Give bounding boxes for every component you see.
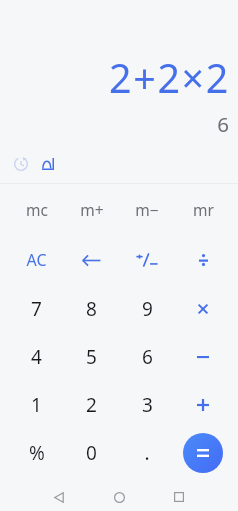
button[interactable] [175,236,231,284]
button[interactable]: m+ [64,185,119,233]
button[interactable] [175,381,231,429]
staticText: 2 [86,392,97,418]
staticText: 6 [142,344,153,370]
button[interactable]: History [7,150,35,178]
staticText: m− [135,199,159,220]
button[interactable]: 7 [9,285,64,333]
staticText: . [144,440,150,466]
staticText: mc [26,199,48,220]
staticText: 2+2×2 [109,51,230,105]
staticText: AC [26,249,47,271]
button[interactable]: 2 [64,381,119,429]
button[interactable]: 5 [64,333,119,381]
staticText: 6 [217,110,229,138]
button[interactable] [119,236,175,284]
staticText: 8 [86,296,97,322]
staticText: 4 [31,344,42,370]
button[interactable]: Recent apps [166,484,192,510]
button[interactable]: mr [175,185,231,233]
button[interactable]: Back [46,484,72,510]
button[interactable] [64,236,119,284]
button[interactable]: 6 [119,333,175,381]
button[interactable]: m− [119,185,175,233]
button[interactable]: 9 [119,285,175,333]
staticText: 0 [86,440,97,466]
button[interactable] [175,333,231,381]
button[interactable]: Home [106,484,132,510]
staticText: 5 [86,344,97,370]
staticText: 7 [31,296,42,322]
button[interactable]: Equals [183,433,223,473]
button[interactable]: mc [9,185,64,233]
button[interactable]: 4 [9,333,64,381]
button[interactable]: 1 [9,381,64,429]
staticText: mr [193,199,214,220]
staticText: 1 [31,392,42,418]
button[interactable] [175,285,231,333]
button[interactable]: % [9,429,64,477]
button[interactable]: 0 [64,429,119,477]
button[interactable]: 3 [119,381,175,429]
button[interactable]: . [119,429,175,477]
button[interactable]: 8 [64,285,119,333]
staticText: % [29,440,45,466]
staticText: m+ [80,199,104,220]
staticText: 3 [142,392,153,418]
button[interactable]: AC [9,236,64,284]
staticText: 9 [142,296,153,322]
button[interactable]: Scientific functions [34,150,62,178]
